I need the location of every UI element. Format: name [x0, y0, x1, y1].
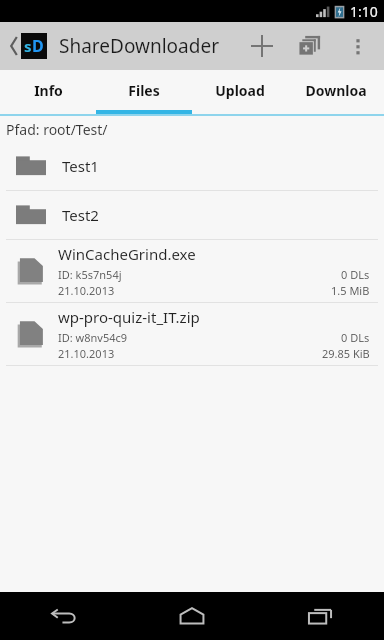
- staticText: Test2: [62, 205, 99, 225]
- staticText: ID: w8nv54c9: [58, 330, 128, 345]
- staticText: wp-pro-quiz-it_IT.zip: [58, 307, 200, 327]
- button[interactable]: Files: [96, 70, 192, 110]
- staticText: Test1: [62, 156, 99, 176]
- staticText: 21.10.2013: [58, 346, 115, 361]
- button[interactable]: Downloa: [288, 70, 384, 110]
- button[interactable]: wp-pro-quiz-it_IT.zip: [0, 303, 384, 365]
- staticText: Info: [34, 81, 63, 100]
- staticText: 0 DLs: [341, 330, 370, 345]
- button[interactable]: More options: [334, 22, 382, 70]
- button[interactable]: Back: [0, 592, 128, 640]
- staticText: 29.85 KiB: [322, 346, 370, 361]
- staticText: D: [32, 35, 44, 57]
- button[interactable]: Test2: [0, 191, 384, 239]
- staticText: WinCacheGrind.exe: [58, 244, 196, 264]
- staticText: Pfad: root/Test/: [6, 120, 108, 139]
- staticText: Upload: [215, 81, 265, 100]
- button[interactable]: Recent apps: [256, 592, 384, 640]
- button[interactable]: Upload: [192, 70, 288, 110]
- button[interactable]: Navigate up: [6, 33, 51, 59]
- staticText: s: [24, 36, 32, 56]
- staticText: ShareDownloader: [59, 33, 219, 59]
- button[interactable]: Info: [0, 70, 96, 110]
- button[interactable]: Home: [128, 592, 256, 640]
- button[interactable]: New item: [286, 22, 334, 70]
- staticText: 1.5 MiB: [331, 283, 370, 298]
- staticText: Downloa: [305, 81, 367, 100]
- button[interactable]: Add: [238, 22, 286, 70]
- staticText: ID: k5s7n54j: [58, 267, 122, 282]
- button[interactable]: WinCacheGrind.exe: [0, 240, 384, 302]
- button[interactable]: Test1: [0, 142, 384, 190]
- staticText: 21.10.2013: [58, 283, 115, 298]
- staticText: 0 DLs: [341, 267, 370, 282]
- staticText: Files: [128, 81, 160, 100]
- staticText: 1:10: [350, 2, 378, 21]
